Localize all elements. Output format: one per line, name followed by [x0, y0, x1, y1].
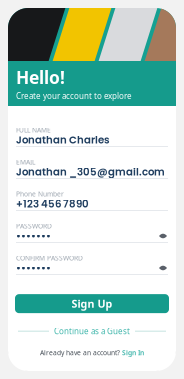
staticText: Sign Up: [71, 297, 112, 311]
staticText: CONFIRM PASSWORD: [16, 254, 83, 262]
staticText: Continue as a Guest: [54, 326, 130, 336]
staticText: Already have an account?: [40, 348, 120, 357]
staticText: Phone Number: [16, 190, 64, 198]
button[interactable]: Show password: [158, 264, 168, 272]
staticText: +123 456 7890: [16, 197, 89, 211]
staticText: Create your account to explore: [16, 91, 132, 101]
button[interactable]: Sign In: [122, 348, 144, 357]
staticText: EMAIL: [16, 158, 35, 166]
button[interactable]: Show password: [158, 232, 168, 240]
staticText: Sign In: [122, 348, 144, 357]
staticText: Jonathan Charles: [16, 133, 110, 147]
staticText: FULL NAME: [16, 126, 51, 134]
staticText: •••••••: [16, 229, 51, 243]
staticText: Hello!: [16, 66, 65, 89]
staticText: Jonathan _305@gmail.com: [16, 165, 165, 179]
staticText: PASSWORD: [16, 222, 52, 230]
staticText: •••••••: [16, 261, 51, 275]
button[interactable]: Sign Up: [15, 294, 169, 313]
